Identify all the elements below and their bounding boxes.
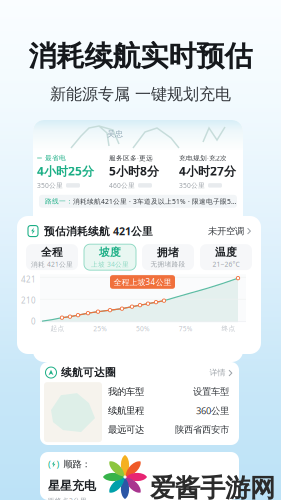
staticText: 路线一： — [45, 197, 73, 205]
staticText: 360公里 — [196, 404, 229, 417]
staticText: 星星充电 — [48, 478, 96, 493]
staticText: 最省电 — [45, 154, 66, 162]
staticText: 210 — [21, 295, 36, 306]
staticText: 全程 — [41, 246, 63, 259]
staticText: 未开空调 — [208, 225, 244, 237]
staticText: 爱酱手游网 — [150, 472, 275, 500]
staticText: 消耗 421公里 — [31, 260, 73, 269]
staticText: 我的车型 — [108, 386, 144, 397]
button[interactable]: 未开空调 — [208, 225, 251, 237]
staticText: 350公里 — [179, 181, 205, 190]
staticText: 350公里 — [37, 181, 63, 190]
staticText: 起点 — [50, 324, 64, 333]
staticText: 顺路： — [63, 458, 90, 470]
staticText: 460公里 — [109, 181, 135, 190]
staticText: 上坡 34公里 — [91, 260, 129, 269]
button[interactable]: 坡度 — [84, 244, 136, 270]
staticText: 温度 — [215, 246, 237, 259]
button[interactable]: 详情 — [209, 368, 234, 377]
button[interactable]: 拥堵 — [142, 244, 194, 270]
staticText: 续航里程 — [108, 405, 144, 416]
staticText: 终点 — [222, 324, 236, 333]
staticText: 距终点3公里 — [48, 496, 87, 500]
staticText: 新能源专属 一键规划充电 — [50, 84, 231, 104]
staticText: 421 — [21, 274, 36, 285]
staticText: 消耗续航421公里 · 3车道及以上51% · 限速电子眼5… — [73, 197, 236, 206]
staticText: 25% — [93, 324, 107, 333]
staticText: 设置车型 — [193, 386, 229, 397]
button[interactable]: 全程 — [26, 244, 78, 270]
staticText: 50% — [136, 324, 150, 333]
staticText: 全程上坡34公里 — [113, 277, 171, 287]
staticText: 无拥堵路段 — [150, 260, 185, 268]
staticText: 0 — [31, 316, 36, 327]
staticText: 详情 — [209, 368, 225, 377]
staticText: 坡度 — [99, 246, 121, 259]
staticText: 21~26°C — [212, 260, 239, 269]
button[interactable]: 温度 — [200, 244, 252, 270]
staticText: 服务区多·更远 — [109, 154, 153, 162]
staticText: 4小时25分 — [37, 163, 94, 179]
staticText: 消耗续航实时预估 — [28, 39, 252, 73]
staticText: 续航可达圈 — [61, 366, 116, 379]
staticText: 拥堵 — [157, 246, 179, 259]
staticText: 陕西省西安市 — [175, 424, 229, 435]
staticText: 75% — [179, 324, 193, 333]
staticText: 充电规划·充2次 — [179, 154, 227, 162]
staticText: 最远可达 — [108, 424, 144, 435]
staticText: 5小时8分 — [109, 163, 159, 179]
staticText: ( — [48, 458, 51, 470]
staticText: ) — [56, 458, 59, 470]
staticText: 预估消耗续航 421公里 — [44, 224, 153, 238]
staticText: 吴忠 — [107, 129, 123, 139]
staticText: 4小时27分 — [179, 163, 236, 179]
